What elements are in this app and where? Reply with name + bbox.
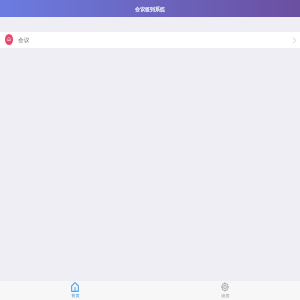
button[interactable]: 设置 xyxy=(150,281,300,300)
staticText: 首页 xyxy=(71,293,80,298)
button[interactable]: 会议 xyxy=(0,32,300,48)
button[interactable]: 首页 xyxy=(0,281,150,300)
staticText: 会议签到系统 xyxy=(135,6,165,12)
staticText: 会议 xyxy=(18,37,30,44)
staticText: 设置 xyxy=(221,293,230,298)
other: More xyxy=(293,38,296,43)
